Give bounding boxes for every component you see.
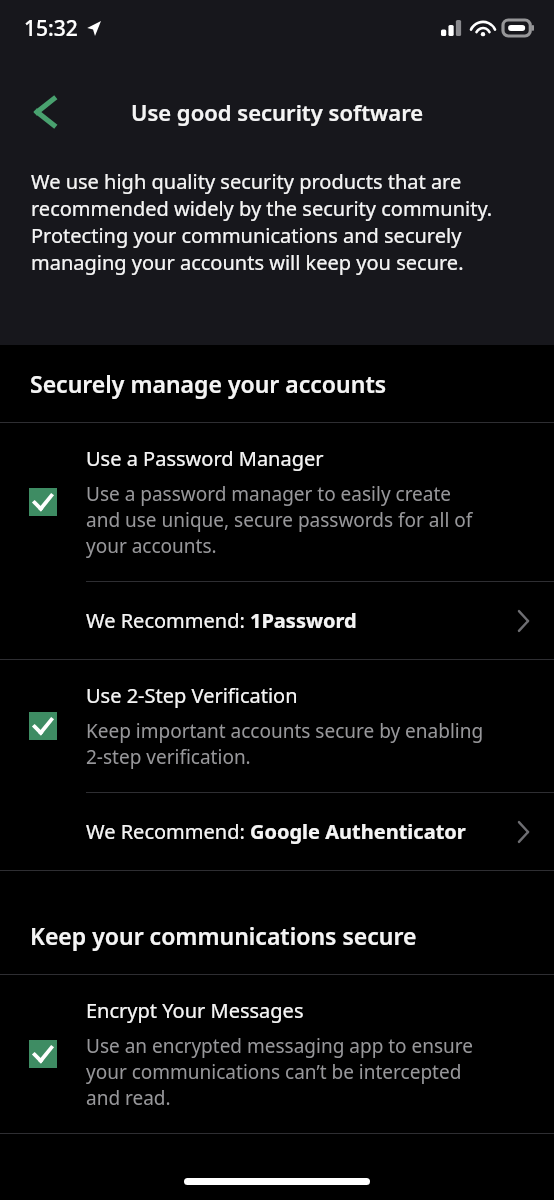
staticText: your communications can’t be intercepted	[86, 1059, 462, 1085]
staticText: Use a password manager to easily create	[86, 481, 452, 507]
staticText: Use a Password Manager	[86, 445, 324, 472]
button[interactable]: Encrypt Your Messages	[0, 975, 554, 1134]
staticText: Protecting your communications and secur…	[31, 222, 462, 249]
button[interactable]: Back	[18, 84, 74, 140]
staticText: Keep important accounts secure by enabli…	[86, 718, 484, 744]
staticText: We Recommend: Google Authenticator	[86, 818, 466, 845]
staticText: We Recommend: 1Password	[86, 607, 357, 634]
button[interactable]: We Recommend: Google Authenticator	[0, 793, 554, 870]
staticText: Use an encrypted messaging app to ensure	[86, 1033, 474, 1059]
staticText: Use 2-Step Verification	[86, 682, 298, 709]
button[interactable]: We Recommend: 1Password	[0, 582, 554, 659]
staticText: and use unique, secure passwords for all…	[86, 507, 473, 533]
staticText: Securely manage your accounts	[30, 368, 387, 399]
button[interactable]: Use a Password Manager	[0, 423, 554, 660]
staticText: your accounts.	[86, 533, 217, 559]
staticText: Encrypt Your Messages	[86, 997, 304, 1024]
staticText: We use high quality security products th…	[31, 168, 462, 195]
staticText: Keep your communications secure	[30, 920, 417, 951]
staticText: and read.	[86, 1085, 171, 1111]
staticText: recommended widely by the security commu…	[31, 195, 493, 222]
staticText: 2-step verification.	[86, 744, 251, 770]
button[interactable]: Use 2-Step Verification	[0, 660, 554, 871]
staticText: 15:32	[24, 14, 78, 43]
staticText: managing your accounts will keep you sec…	[31, 249, 464, 276]
staticText: Use good security software	[131, 97, 424, 127]
